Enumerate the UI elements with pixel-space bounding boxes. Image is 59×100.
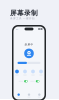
staticText: 9:41 (15, 28, 18, 30)
button[interactable]: Toggle setting (30, 80, 39, 82)
button[interactable]: Recording option (23, 70, 27, 75)
button[interactable]: Tab (34, 93, 44, 98)
button[interactable]: Stop recording (24, 49, 34, 58)
button[interactable]: Recording option (39, 70, 43, 75)
staticText: 屏幕录制 (10, 9, 38, 17)
button[interactable]: Recording option (31, 70, 35, 75)
button[interactable]: Toggle setting (19, 80, 28, 82)
staticText: 录屏中 (24, 43, 33, 46)
staticText: 录屏工具 一键开始 (10, 17, 35, 20)
button[interactable]: Tab (13, 93, 24, 98)
button[interactable]: Recording option (15, 70, 19, 75)
button[interactable]: Tab (24, 93, 34, 98)
